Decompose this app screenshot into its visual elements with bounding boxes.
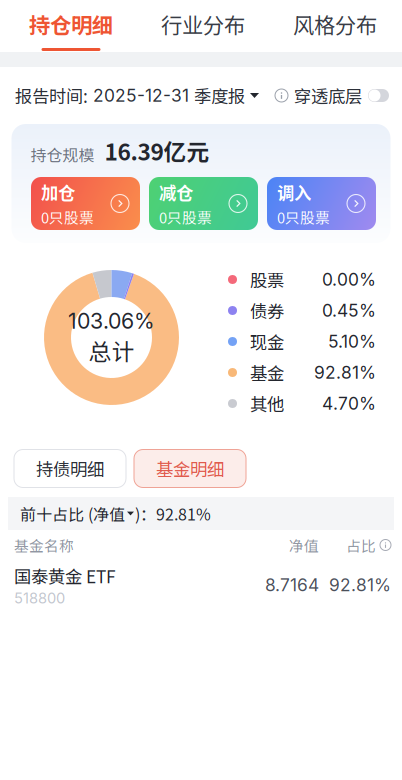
staticText: 现金 — [250, 329, 284, 354]
staticText: 0只股票 — [41, 206, 94, 228]
staticText: 行业分布 — [161, 9, 245, 39]
staticText: 92.81% — [329, 574, 391, 595]
button[interactable]: 国泰黄金 ETF — [0, 560, 402, 610]
staticText: 2025-12-31 — [88, 85, 194, 106]
staticText: 占比 — [346, 534, 376, 556]
staticText: 其他 — [250, 391, 284, 416]
staticText: 基金名称 — [14, 534, 74, 556]
staticText: 持仓明细 — [29, 9, 113, 39]
staticText: 103.06% — [68, 308, 155, 334]
button[interactable]: 持债明细 — [14, 449, 126, 487]
staticText: 股票 — [250, 267, 284, 292]
staticText: 季度报 — [194, 83, 245, 108]
staticText: 净值 — [289, 534, 319, 556]
staticText: 92.81% — [314, 362, 376, 383]
staticText: 调入 — [277, 179, 311, 204]
staticText: 债券 — [250, 298, 284, 323]
button[interactable]: 风格分布 — [269, 0, 401, 52]
staticText: 518800 — [14, 589, 65, 607]
button[interactable]: 行业分布 — [137, 0, 269, 52]
button[interactable]: 基金明细 — [134, 449, 246, 487]
staticText: 5.10% — [328, 331, 376, 352]
staticText: 减仓 — [159, 179, 193, 204]
staticText: 穿透底层 — [294, 83, 362, 108]
staticText: 基金 — [250, 360, 284, 385]
button[interactable]: 加仓 — [31, 177, 140, 230]
staticText: 基金明细 — [156, 456, 224, 481]
staticText: 报告时间: — [15, 83, 88, 108]
staticText: 加仓 — [41, 179, 75, 204]
staticText: 总计 — [88, 334, 134, 367]
button[interactable]: 调入 — [267, 177, 376, 230]
staticText: 国泰黄金 ETF — [14, 563, 116, 588]
staticText: 风格分布 — [293, 9, 377, 39]
staticText: 0.45% — [322, 300, 376, 321]
button[interactable]: 持仓明细 — [5, 0, 137, 52]
button[interactable]: 减仓 — [149, 177, 258, 230]
staticText: 8.7164 — [265, 574, 319, 595]
staticText: 0.00% — [322, 269, 376, 290]
staticText: 前十占比 (净值 — [20, 502, 125, 525]
staticText: 持债明细 — [36, 456, 104, 481]
staticText: 4.70% — [322, 393, 376, 414]
staticText: 0只股票 — [277, 206, 330, 228]
staticText: 0只股票 — [159, 206, 212, 228]
staticText: 16.39亿元 — [94, 134, 209, 167]
staticText: )：92.81% — [135, 502, 211, 525]
staticText: 持仓规模 — [30, 143, 94, 166]
